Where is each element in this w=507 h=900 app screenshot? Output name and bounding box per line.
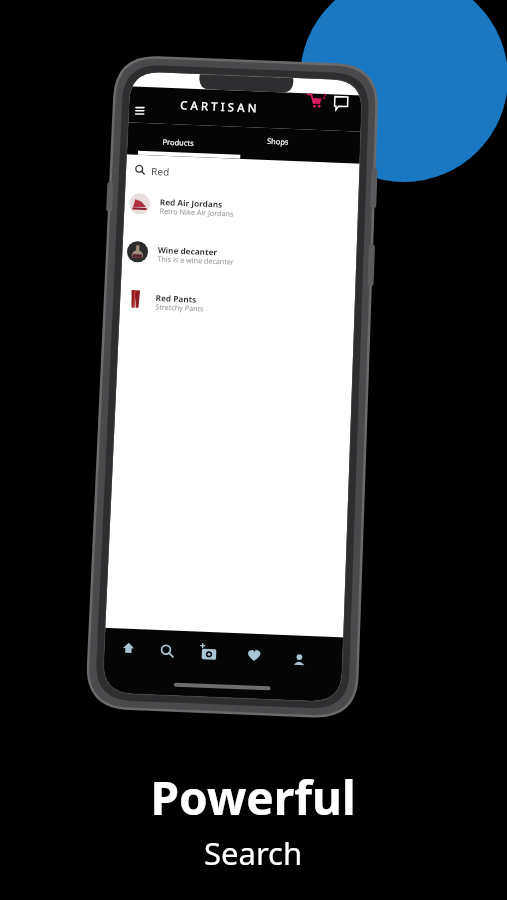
button[interactable]: Powerful Search promo — [0, 0, 507, 900]
